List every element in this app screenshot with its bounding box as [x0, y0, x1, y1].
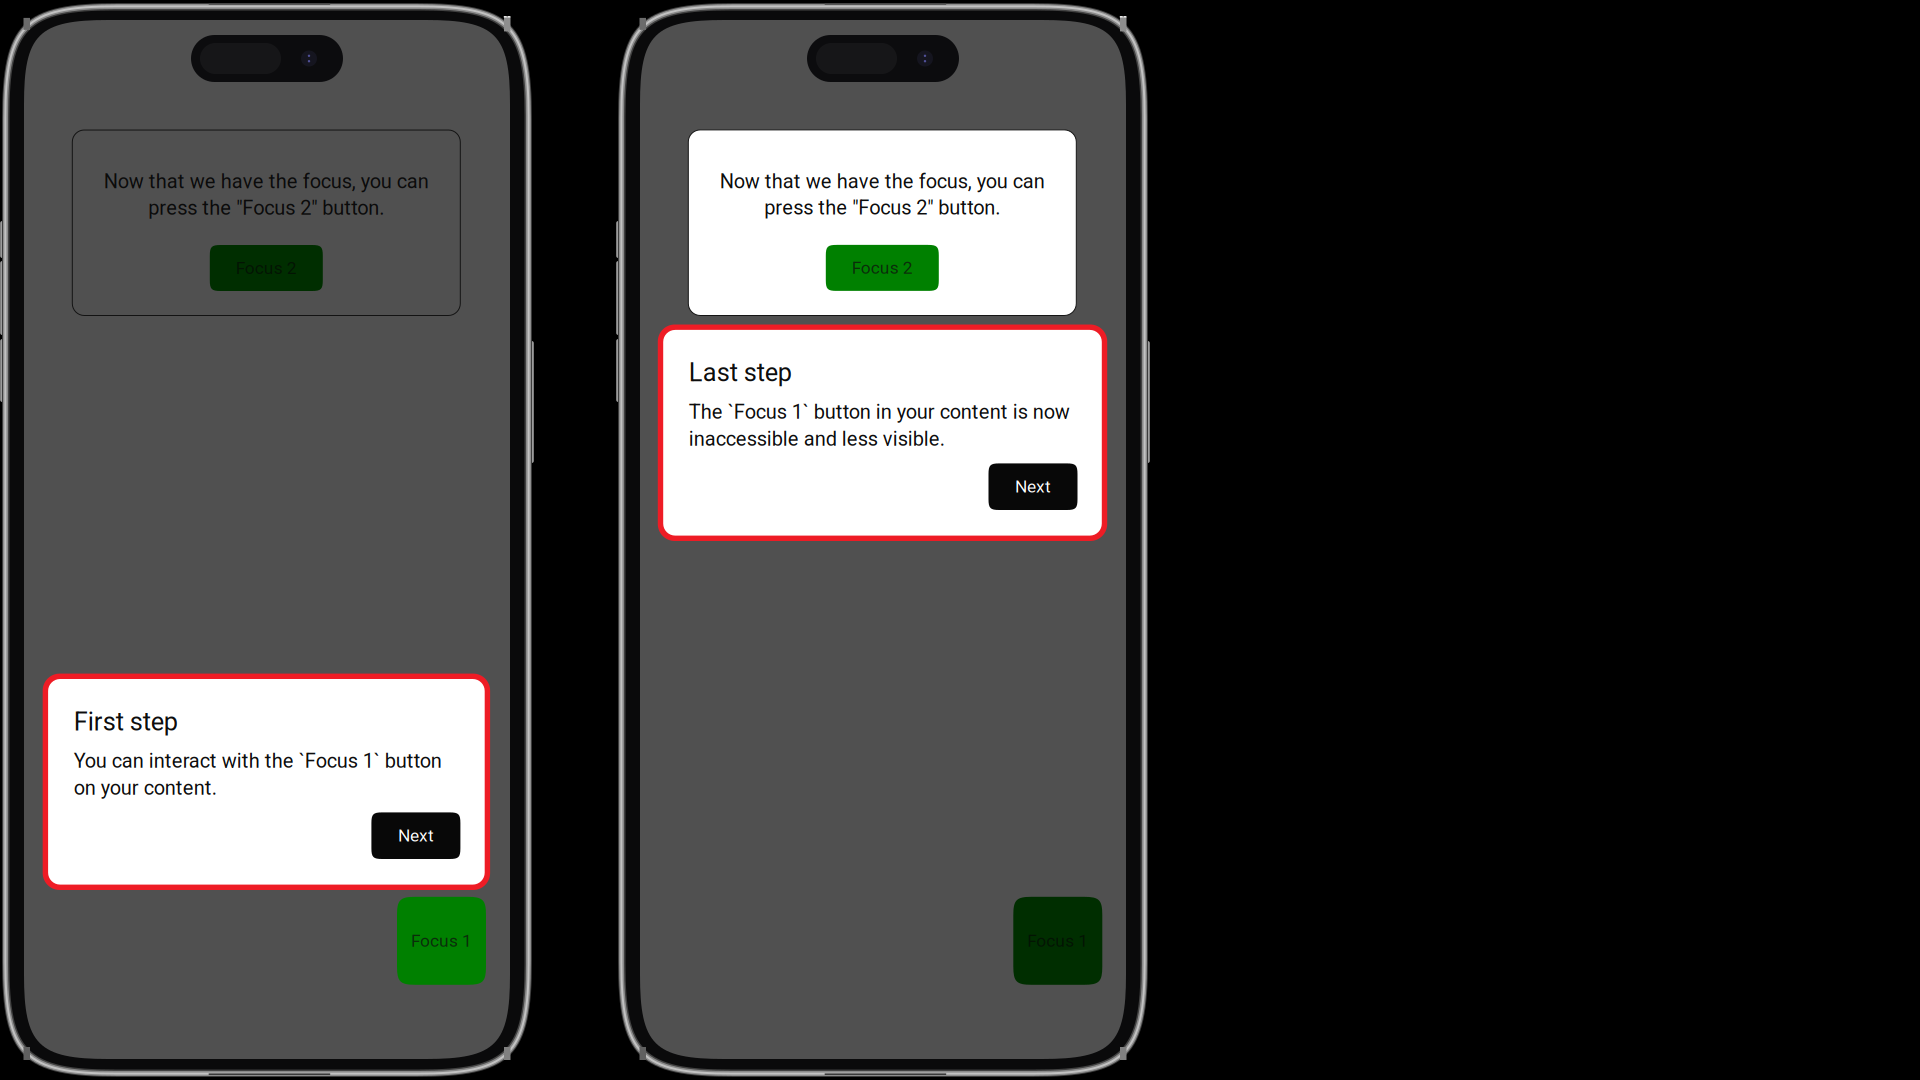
staticText: First step	[74, 707, 178, 737]
staticText: You can interact with the `Focus 1` butt…	[74, 749, 442, 773]
button[interactable]: Focus 2	[210, 245, 323, 291]
button[interactable]: Focus 1	[1013, 897, 1102, 985]
staticText: Focus 2	[236, 258, 297, 278]
staticText: The `Focus 1` button in your content is …	[689, 400, 1070, 423]
staticText: Focus 1	[411, 931, 472, 951]
button[interactable]: Next	[988, 463, 1077, 510]
staticText: Focus 2	[852, 258, 913, 278]
staticText: press the "Focus 2" button.	[148, 196, 384, 219]
staticText: Next	[1015, 476, 1051, 497]
staticText: inaccessible and less visible.	[689, 427, 945, 451]
button[interactable]: Next	[371, 812, 460, 859]
staticText: Next	[398, 825, 434, 846]
staticText: Now that we have the focus, you can	[720, 170, 1045, 193]
button[interactable]: Focus 1	[397, 897, 486, 985]
staticText: Last step	[689, 358, 792, 387]
staticText: Focus 1	[1027, 931, 1088, 951]
staticText: on your content.	[74, 776, 217, 800]
staticText: Now that we have the focus, you can	[104, 170, 429, 193]
button[interactable]: Focus 2	[826, 245, 939, 291]
staticText: press the "Focus 2" button.	[764, 196, 1000, 219]
